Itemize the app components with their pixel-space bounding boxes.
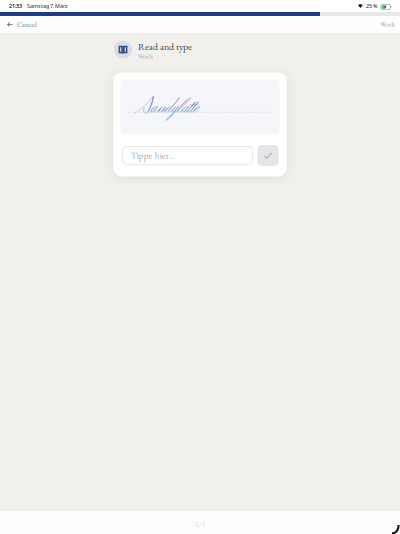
- staticText: Tippe hier...: [131, 150, 175, 161]
- staticText: Sandglatte: [138, 92, 198, 123]
- staticText: Cancel: [17, 20, 37, 29]
- staticText: 25 %: [366, 2, 377, 10]
- button[interactable]: Cancel: [0, 17, 45, 32]
- button[interactable]: Handwriting input: [388, 521, 400, 534]
- staticText: Read and type: [138, 40, 192, 53]
- button[interactable]: Words: [372, 17, 400, 32]
- button[interactable]: Submit: [257, 145, 278, 166]
- staticText: 1/1: [195, 519, 206, 529]
- staticText: Words: [138, 52, 153, 61]
- staticText: Words: [380, 20, 395, 29]
- staticText: Samstag 7. März: [27, 2, 68, 10]
- staticText: 21:33: [9, 2, 22, 10]
